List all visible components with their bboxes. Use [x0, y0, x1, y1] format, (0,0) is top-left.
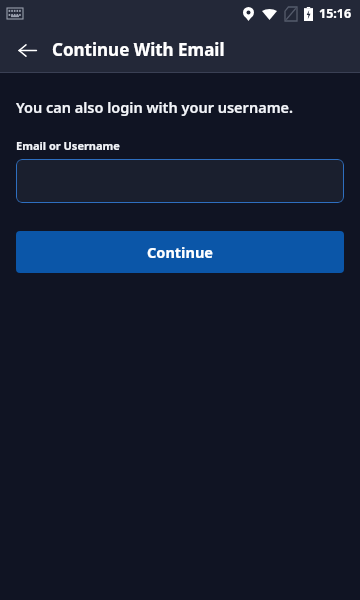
staticText: Continue With Email [52, 38, 225, 61]
staticText: You can also login with your username. [16, 97, 294, 117]
staticText: Continue [147, 242, 213, 262]
button[interactable] [16, 159, 344, 203]
staticText: 15:16 [319, 5, 352, 22]
staticText: Email or Username [16, 138, 120, 153]
button[interactable]: Back [10, 33, 44, 67]
button[interactable]: Continue [16, 231, 344, 273]
